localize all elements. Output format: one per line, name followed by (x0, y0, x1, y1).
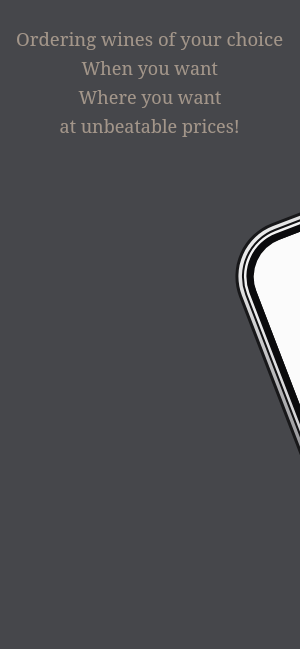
button[interactable]: Ordering wines of your choice — promotio… (0, 0, 300, 649)
